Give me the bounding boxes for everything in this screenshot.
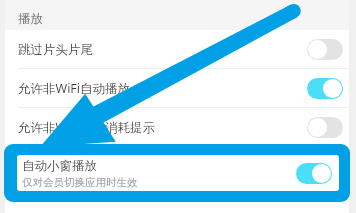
staticText: 播放 [18, 11, 43, 27]
button[interactable]: 允许非WiFi自动播放 [5, 69, 349, 108]
button[interactable]: 允许非WiFi流量消耗提示 [5, 108, 349, 147]
staticText: 仅对会员切换应用时生效 [22, 176, 138, 189]
button[interactable]: Switch off [307, 39, 343, 60]
staticText: 允许非WiFi自动播放 [18, 80, 131, 97]
button[interactable]: Switch off [307, 117, 343, 138]
staticText: 跳过片头片尾 [18, 42, 93, 58]
button[interactable]: Switch on [296, 163, 332, 184]
button[interactable]: 跳过片头片尾 [5, 30, 349, 69]
staticText: 允许非WiFi流量消耗提示 [18, 119, 156, 136]
button[interactable]: 自动小窗播放 [17, 155, 339, 191]
button[interactable]: Switch on [307, 78, 343, 99]
staticText: 自动小窗播放 [22, 158, 97, 174]
